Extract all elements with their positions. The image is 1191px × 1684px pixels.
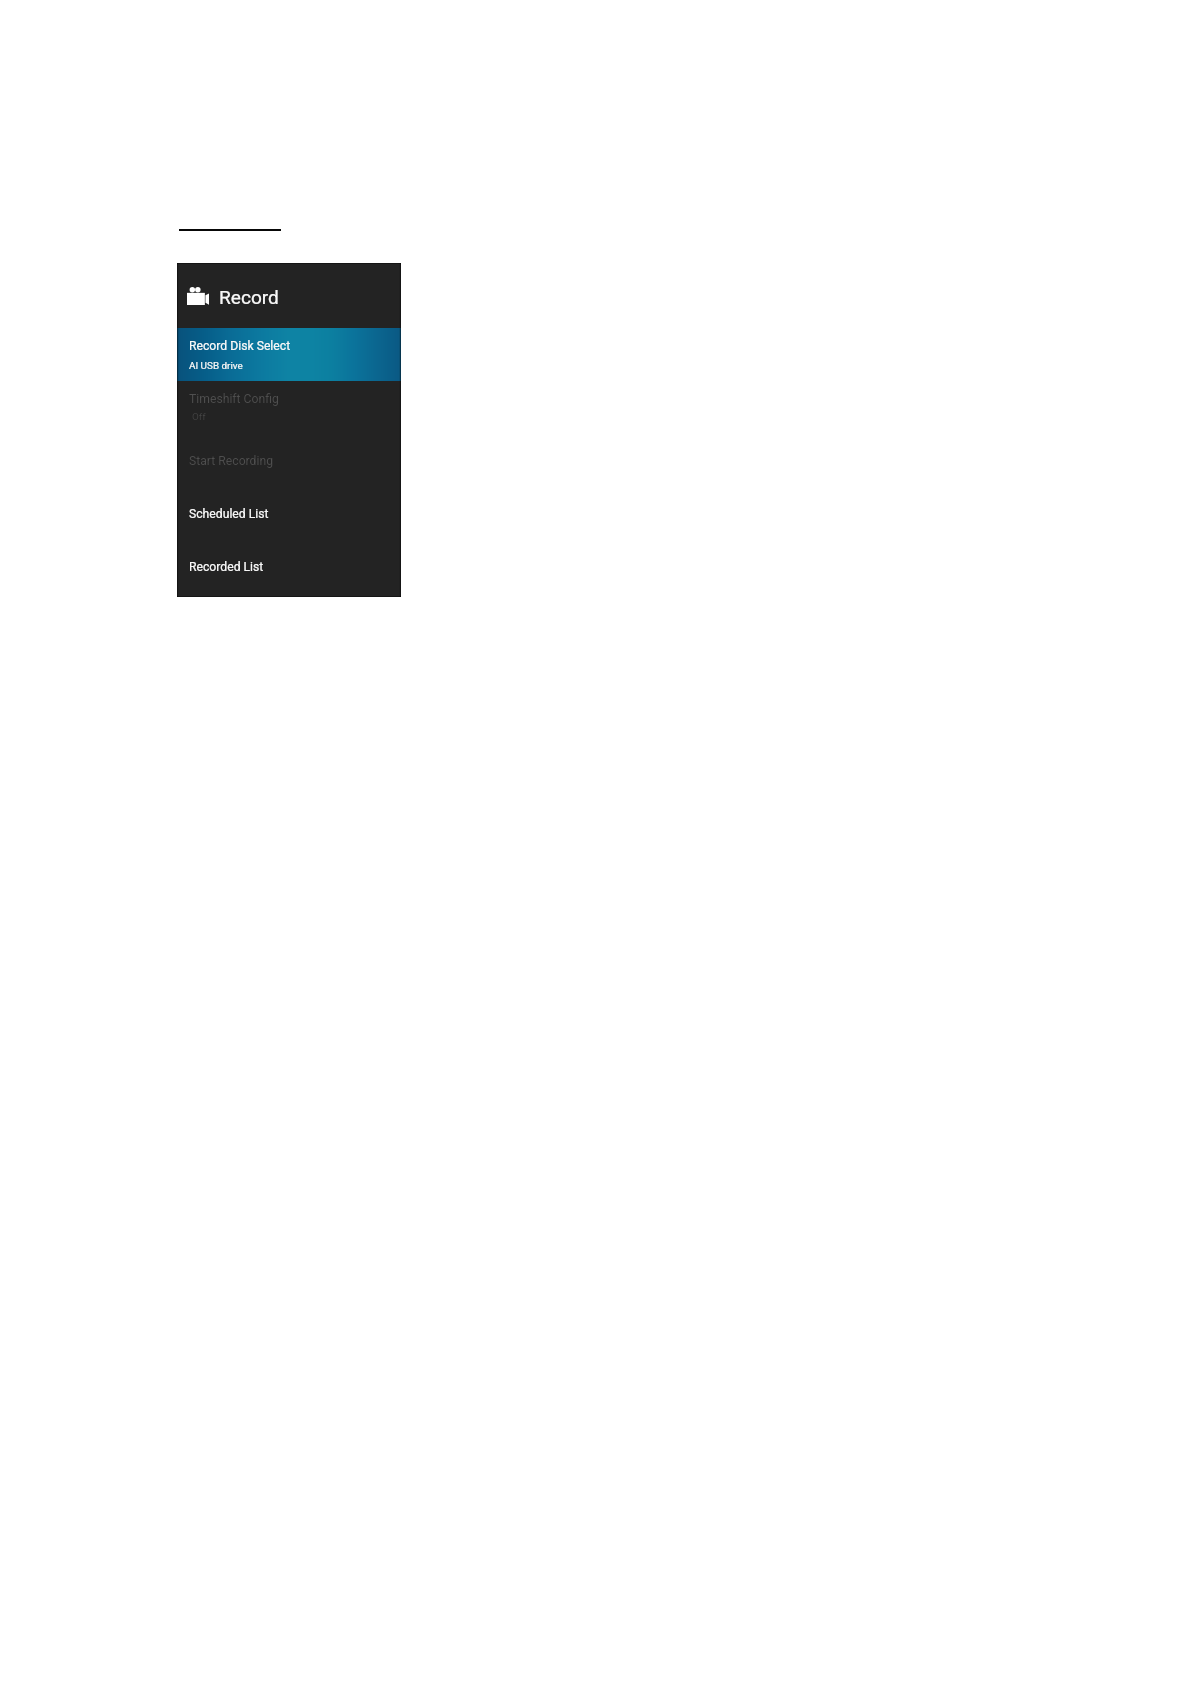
other: Record (187, 287, 209, 305)
button[interactable]: Timeshift Config (177, 381, 401, 434)
staticText: AI USB drive (189, 360, 243, 372)
staticText: Record (219, 286, 279, 308)
button[interactable]: Scheduled List (177, 487, 401, 540)
staticText: Off (192, 411, 206, 423)
button[interactable]: Start Recording (177, 434, 401, 487)
staticText: Timeshift Config (189, 392, 279, 406)
staticText: Scheduled List (189, 507, 269, 521)
staticText: Start Recording (189, 454, 274, 468)
button[interactable]: Recorded List (177, 540, 401, 593)
staticText: Record Disk Select (189, 339, 291, 353)
button[interactable]: Record Disk Select (177, 328, 401, 381)
staticText: Recorded List (189, 560, 264, 574)
